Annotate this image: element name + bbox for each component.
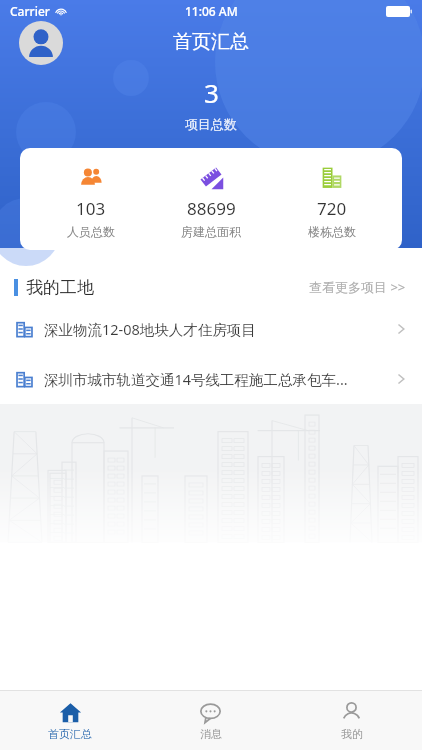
button[interactable]: 首页汇总	[0, 691, 140, 750]
staticText: 我的	[341, 727, 363, 741]
staticText: 房建总面积	[181, 224, 241, 239]
button[interactable]: 查看更多项目 >>	[307, 274, 408, 300]
staticText: 深业物流12-08地块人才住房项目	[44, 319, 386, 339]
button[interactable]: 我的	[281, 691, 422, 750]
staticText: 深圳市城市轨道交通14号线工程施工总承包车...	[44, 369, 386, 389]
button[interactable]: Profile	[19, 21, 63, 65]
staticText: 首页汇总	[173, 30, 249, 54]
staticText: 楼栋总数	[308, 224, 356, 239]
staticText: 人员总数	[67, 224, 115, 239]
staticText: 11:06 AM	[185, 3, 238, 19]
staticText: 88699	[187, 197, 236, 220]
staticText: 消息	[200, 727, 222, 741]
staticText: Carrier	[10, 3, 50, 19]
button[interactable]: 深业物流12-08地块人才住房项目	[0, 304, 422, 354]
staticText: 查看更多项目 >>	[309, 278, 406, 296]
staticText: 首页汇总	[48, 727, 92, 741]
button[interactable]: 88699	[161, 164, 261, 239]
staticText: 项目总数	[185, 116, 237, 132]
button[interactable]: 720	[282, 164, 382, 239]
staticText: 103	[76, 197, 106, 220]
button[interactable]: 深圳市城市轨道交通14号线工程施工总承包车...	[0, 354, 422, 404]
staticText: 720	[317, 197, 347, 220]
button[interactable]: 103	[41, 164, 141, 239]
staticText: 我的工地	[26, 277, 94, 298]
staticText: 3	[204, 75, 219, 110]
button[interactable]: 消息	[140, 691, 281, 750]
